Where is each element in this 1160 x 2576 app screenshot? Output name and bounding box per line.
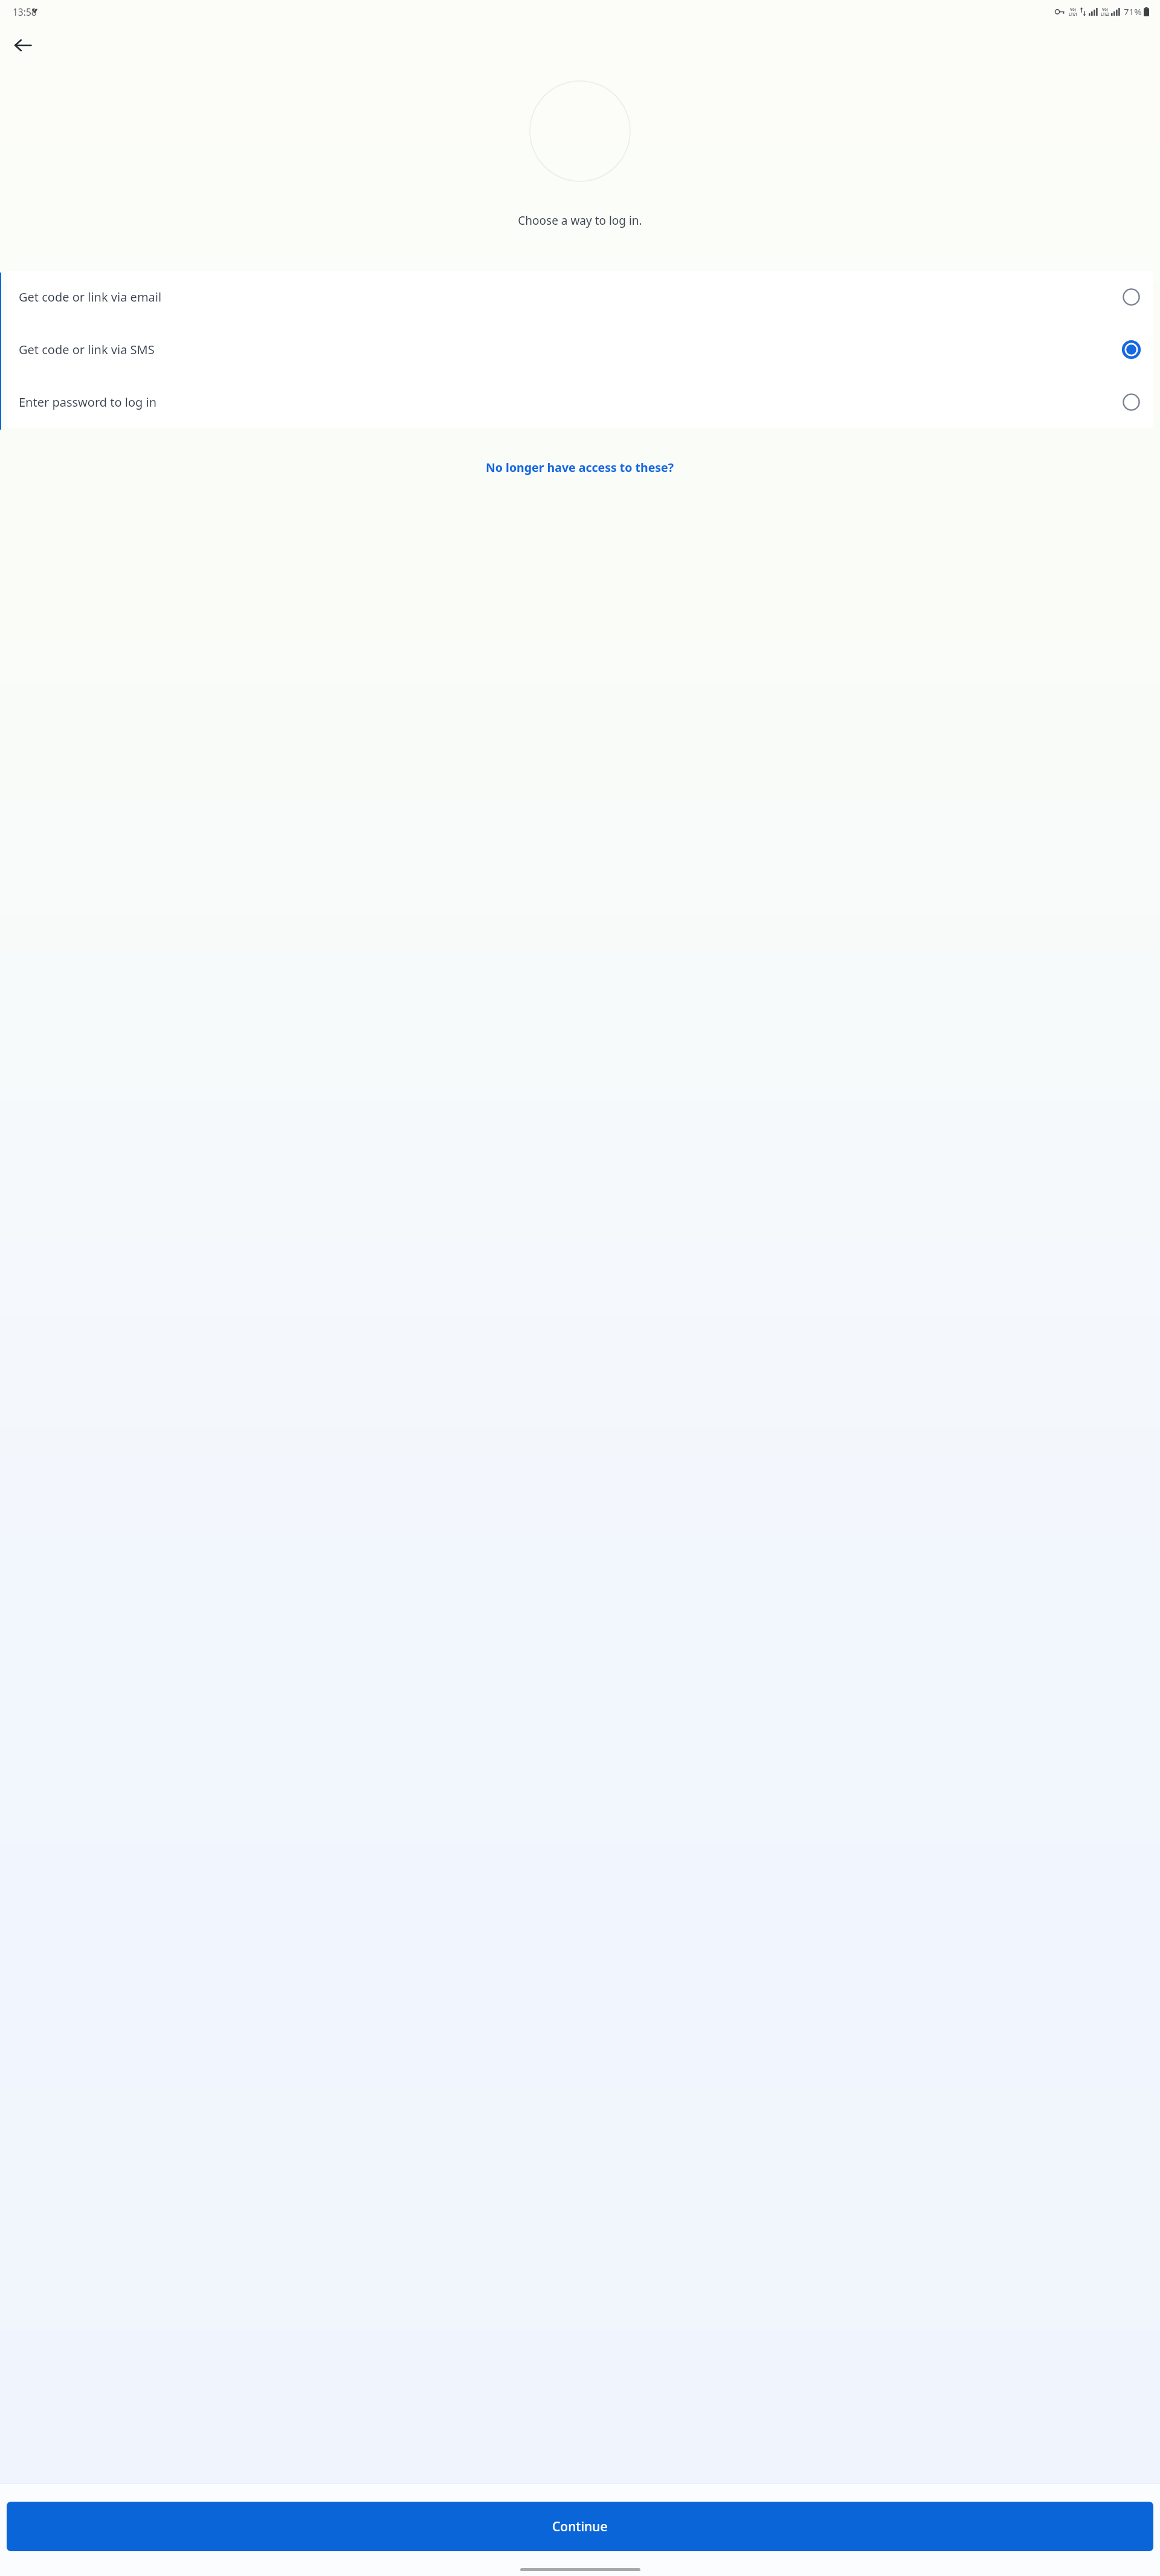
staticText: LTE2	[1101, 11, 1109, 16]
staticText: Continue	[552, 2518, 608, 2536]
button[interactable]: No longer have access to these?	[481, 457, 679, 478]
staticText: 71%	[1124, 5, 1142, 18]
staticText: Get code or link via email	[19, 289, 1122, 305]
button[interactable]: Enter password to log in	[7, 376, 1153, 428]
staticText: Enter password to log in	[19, 394, 1122, 410]
staticText: LTE1	[1069, 11, 1077, 16]
button[interactable]: Continue	[7, 2502, 1153, 2551]
button[interactable]: Get code or link via SMS	[7, 323, 1153, 376]
staticText: Vo)	[1102, 7, 1108, 11]
staticText: Vo)	[1070, 7, 1076, 11]
staticText: Choose a way to log in.	[518, 213, 642, 228]
staticText: Get code or link via SMS	[19, 341, 1122, 358]
staticText: 13:58	[13, 5, 37, 18]
staticText: No longer have access to these?	[486, 459, 674, 476]
button[interactable]: Get code or link via email	[7, 271, 1153, 323]
button[interactable]: Back	[8, 31, 37, 60]
